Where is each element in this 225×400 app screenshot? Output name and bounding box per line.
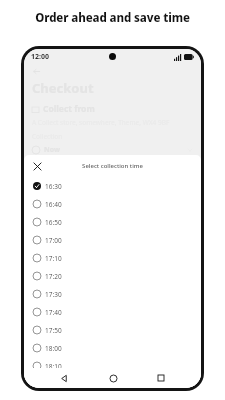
- button[interactable]: 16:40: [24, 195, 201, 213]
- button[interactable]: 17:10: [24, 249, 201, 267]
- button[interactable]: 17:40: [24, 303, 201, 321]
- staticText: 16:50: [45, 218, 62, 227]
- staticText: Order ahead and save time: [0, 10, 225, 26]
- button[interactable]: 17:30: [24, 285, 201, 303]
- staticText: 12:00: [31, 52, 49, 62]
- staticText: 17:40: [45, 308, 62, 317]
- button[interactable]: Close: [28, 157, 46, 175]
- button[interactable]: Home: [104, 369, 122, 387]
- button[interactable]: 17:20: [24, 267, 201, 285]
- button[interactable]: 16:30: [24, 177, 201, 195]
- staticText: 17:30: [45, 290, 62, 299]
- staticText: 18:00: [45, 344, 62, 353]
- button[interactable]: 17:50: [24, 321, 201, 339]
- button[interactable]: 17:00: [24, 231, 201, 249]
- button[interactable]: 16:50: [24, 213, 201, 231]
- button[interactable]: Recent apps: [152, 369, 170, 387]
- staticText: 18:10: [45, 362, 62, 371]
- staticText: Now: [44, 145, 60, 155]
- staticText: Collect from: [43, 103, 95, 115]
- staticText: 16:30: [45, 182, 62, 191]
- button[interactable]: [24, 375, 201, 384]
- staticText: 17:20: [45, 272, 62, 281]
- button[interactable]: 18:10: [24, 357, 201, 375]
- staticText: 17:50: [45, 326, 62, 335]
- button[interactable]: Back: [55, 369, 73, 387]
- staticText: Select collection time: [24, 162, 201, 170]
- staticText: 17:10: [45, 254, 62, 263]
- staticText: 16:40: [45, 200, 62, 209]
- button[interactable]: 18:00: [24, 339, 201, 357]
- staticText: Checkout: [32, 79, 94, 97]
- staticText: 17:00: [45, 236, 62, 245]
